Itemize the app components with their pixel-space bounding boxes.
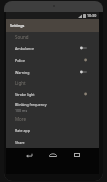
staticText: Warning <box>15 70 80 75</box>
staticText: 10:30 <box>87 13 97 18</box>
button[interactable]: Police <box>6 54 99 66</box>
staticText: Strobe light <box>15 92 80 97</box>
staticText: Police <box>15 58 80 63</box>
button[interactable]: Warning <box>6 66 99 78</box>
button[interactable]: Back <box>20 148 38 162</box>
staticText: Sound <box>15 34 29 40</box>
staticText: More <box>15 116 27 122</box>
staticText: Rate app <box>15 128 30 133</box>
button[interactable]: Blinking frequency <box>6 100 99 114</box>
staticText: Settings <box>10 23 25 28</box>
button[interactable]: Recent apps <box>68 148 86 162</box>
staticText: 100 ms <box>15 108 28 113</box>
button[interactable]: Ambulance <box>6 42 99 54</box>
staticText: Share <box>15 140 25 145</box>
button[interactable]: Share <box>6 136 99 148</box>
button[interactable]: Rate app <box>6 124 99 136</box>
button[interactable]: Strobe light <box>6 88 99 100</box>
staticText: Ambulance <box>15 46 80 51</box>
staticText: Light <box>15 80 26 86</box>
button[interactable]: Home <box>44 148 62 162</box>
staticText: Blinking frequency <box>15 102 47 107</box>
